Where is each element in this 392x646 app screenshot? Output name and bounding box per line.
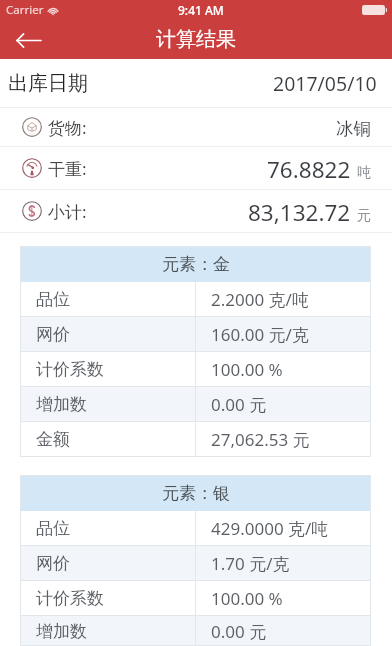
staticText: 品位 <box>36 518 70 539</box>
staticText: 干重: <box>48 157 87 180</box>
staticText: 83,132.72 <box>248 197 351 228</box>
staticText: 元素：银 <box>162 483 230 504</box>
staticText: 0.00 元 <box>211 393 267 416</box>
staticText: 网价 <box>36 553 70 574</box>
staticText: 160.00 元/克 <box>211 323 309 346</box>
staticText: 2.2000 克/吨 <box>211 288 309 311</box>
staticText: 网价 <box>36 324 70 345</box>
staticText: 货物: <box>48 116 87 139</box>
staticText: 429.0000 克/吨 <box>211 517 329 540</box>
staticText: 27,062.53 元 <box>211 428 310 451</box>
staticText: 品位 <box>36 289 70 310</box>
staticText: 金额 <box>36 429 70 450</box>
staticText: 吨 <box>357 164 371 182</box>
staticText: 冰铜 <box>336 118 371 140</box>
staticText: 元素：金 <box>162 254 230 275</box>
staticText: 9:41 AM <box>178 2 224 18</box>
staticText: 计算结果 <box>156 27 236 52</box>
staticText: 2017/05/10 <box>273 70 377 97</box>
staticText: 增加数 <box>36 394 87 415</box>
staticText: 100.00 % <box>211 587 283 610</box>
staticText: 小计: <box>48 200 87 223</box>
staticText: 76.8822 <box>267 154 351 185</box>
staticText: 100.00 % <box>211 358 283 381</box>
staticText: 0.00 元 <box>211 620 267 643</box>
staticText: 计价系数 <box>36 359 104 380</box>
staticText: 出库日期 <box>8 71 88 96</box>
button[interactable]: Back <box>10 21 48 59</box>
staticText: Carrier <box>6 2 44 18</box>
staticText: 元 <box>357 207 371 225</box>
staticText: 计价系数 <box>36 588 104 609</box>
staticText: 1.70 元/克 <box>211 552 290 575</box>
staticText: 增加数 <box>36 621 87 642</box>
